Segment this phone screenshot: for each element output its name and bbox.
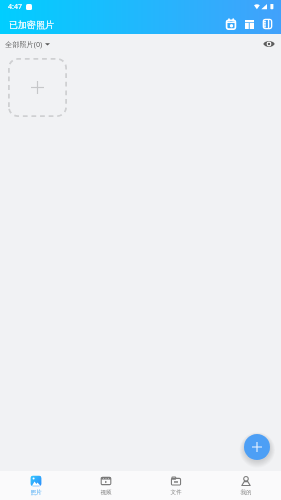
staticText: 文件 — [170, 489, 182, 496]
staticText: 视频 — [100, 489, 112, 496]
button[interactable]: Add photo — [8, 58, 67, 117]
button[interactable]: Notebook — [258, 15, 276, 33]
staticText: 照片 — [30, 489, 42, 496]
button[interactable]: Layout — [240, 15, 258, 33]
button[interactable]: 我的 — [211, 475, 281, 496]
button[interactable]: Add — [244, 434, 270, 460]
button[interactable]: 文件 — [141, 475, 211, 496]
staticText: 全部照片(0) — [5, 39, 43, 49]
staticText: 我的 — [240, 489, 252, 496]
staticText: 已加密照片 — [9, 19, 54, 30]
button[interactable]: 全部照片(0) — [5, 39, 50, 49]
button[interactable]: 视频 — [71, 475, 141, 496]
button[interactable]: 照片 — [0, 475, 71, 496]
button[interactable]: Preview — [261, 36, 277, 52]
button[interactable]: Calendar — [222, 15, 240, 33]
staticText: 4:47 — [8, 2, 22, 12]
